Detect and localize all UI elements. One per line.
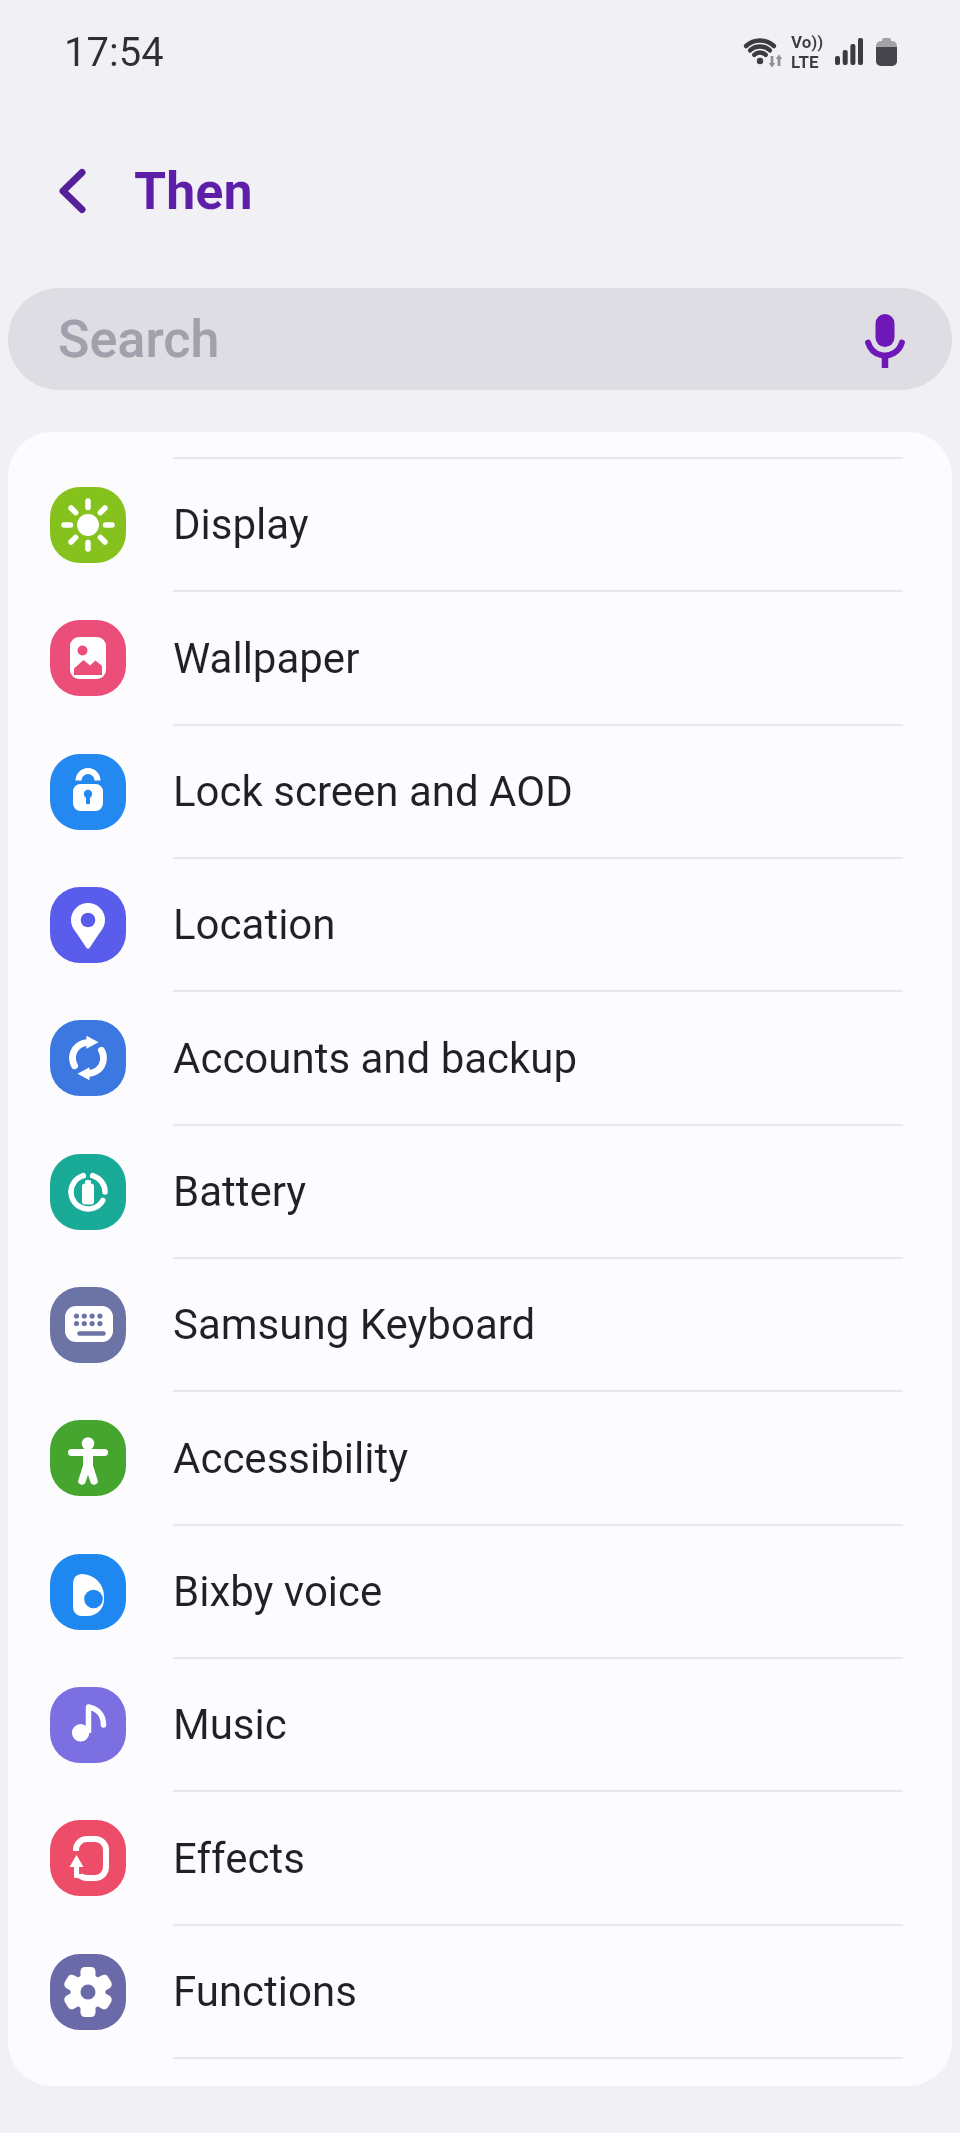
staticText: Bixby voice: [173, 1567, 383, 1616]
staticText: Display: [173, 500, 309, 549]
staticText: Effects: [173, 1834, 305, 1883]
button[interactable]: [862, 309, 908, 369]
staticText: Music: [173, 1700, 287, 1749]
button[interactable]: Search: [8, 288, 952, 390]
button[interactable]: Wallpaper: [8, 592, 952, 724]
staticText: Vo)): [791, 32, 824, 52]
staticText: LTE: [791, 52, 819, 72]
button[interactable]: [50, 169, 94, 213]
staticText: Location: [173, 900, 336, 949]
staticText: 17:54: [64, 29, 164, 76]
staticText: Wallpaper: [173, 634, 360, 683]
staticText: Functions: [173, 1967, 357, 2016]
button[interactable]: Lock screen and AOD: [8, 726, 952, 857]
button[interactable]: Samsung Keyboard: [8, 1259, 952, 1390]
button[interactable]: Functions: [8, 1926, 952, 2057]
staticText: Accounts and backup: [173, 1034, 578, 1083]
button[interactable]: Location: [8, 859, 952, 990]
button[interactable]: Display: [8, 459, 952, 590]
button[interactable]: Effects: [8, 1792, 952, 1924]
staticText: Then: [134, 161, 253, 222]
staticText: Search: [58, 309, 220, 370]
staticText: Lock screen and AOD: [173, 767, 573, 816]
button[interactable]: Music: [8, 1659, 952, 1790]
staticText: Samsung Keyboard: [173, 1300, 536, 1349]
button[interactable]: Accessibility: [8, 1392, 952, 1524]
staticText: Accessibility: [173, 1434, 409, 1483]
staticText: Battery: [173, 1167, 307, 1216]
button[interactable]: Accounts and backup: [8, 992, 952, 1124]
button[interactable]: Bixby voice: [8, 1526, 952, 1657]
button[interactable]: Battery: [8, 1126, 952, 1257]
